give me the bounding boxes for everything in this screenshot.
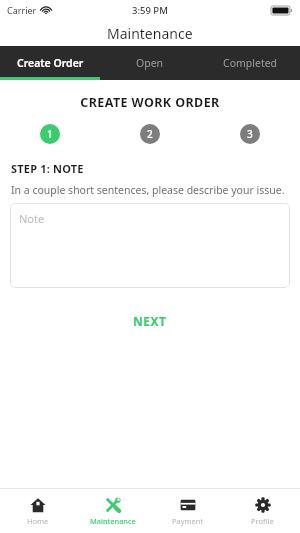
button[interactable]: Payment [150,489,225,533]
staticText: CREATE WORK ORDER [0,94,300,111]
staticText: STEP 1: NOTE [11,161,84,176]
button[interactable]: 3 [240,124,260,144]
button[interactable]: 2 [140,124,160,144]
button[interactable]: Open [100,46,200,80]
staticText: Create Order [17,56,84,70]
staticText: Note [19,211,45,226]
staticText: Open [136,56,164,70]
staticText: In a couple short sentences, please desc… [11,183,285,197]
staticText: Payment [172,516,204,526]
button[interactable]: Create Order [0,46,100,80]
button[interactable]: Home [0,489,75,533]
staticText: Maintenance [107,24,193,43]
staticText: Carrier [7,4,37,16]
button[interactable]: Maintenance [75,489,150,533]
staticText: Home [27,516,49,526]
staticText: Profile [251,516,274,526]
staticText: 3:59 PM [132,4,168,17]
staticText: 3 [247,127,253,141]
button[interactable]: NEXT [119,308,181,334]
staticText: NEXT [133,313,167,329]
button[interactable]: 1 [40,124,60,144]
button[interactable]: Completed [200,46,300,80]
staticText: 1 [47,127,53,141]
staticText: Completed [223,56,278,70]
staticText: Maintenance [90,516,136,526]
staticText: 2 [147,127,153,141]
button[interactable]: Profile [225,489,300,533]
button[interactable]: Note [10,203,290,288]
